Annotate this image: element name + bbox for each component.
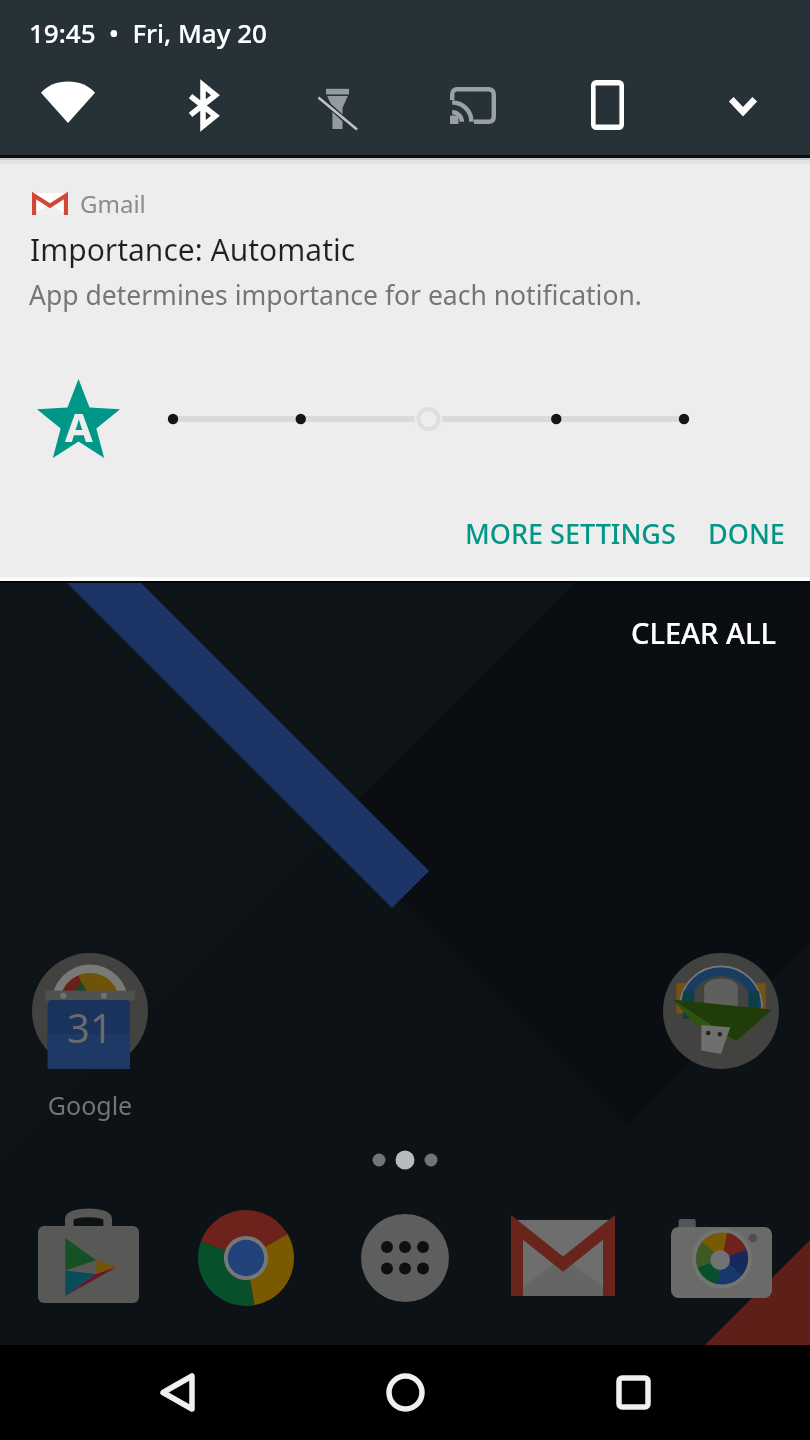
button[interactable]: Back [130,1345,225,1440]
button[interactable]: Flashlight off [270,72,405,138]
staticText: App determines importance for each notif… [29,277,642,313]
button[interactable]: Wi-Fi [0,72,135,138]
staticText: CLEAR ALL [631,613,776,652]
button[interactable]: Display [540,72,675,138]
button[interactable]: Camera [658,1195,784,1321]
button[interactable]: All apps [342,1195,468,1321]
button[interactable]: MORE SETTINGS [451,504,690,563]
button[interactable]: Media folder [663,953,779,1069]
staticText: MORE SETTINGS [465,515,676,552]
staticText: 19:45 • Fri, May 20 [29,15,267,50]
button[interactable]: Bluetooth [135,72,270,138]
button[interactable]: Google folder [32,953,148,1069]
button[interactable]: Recent apps [586,1345,681,1440]
button[interactable]: DONE [694,504,799,563]
button[interactable]: Chrome [183,1195,309,1321]
staticText: 31 [67,1000,113,1054]
button[interactable]: CLEAR ALL [611,599,796,666]
staticText: DONE [708,515,785,552]
staticText: A [65,399,93,453]
staticText: Importance: Automatic [30,229,356,270]
staticText: Google [25,1088,155,1122]
button[interactable]: Play Store [25,1195,151,1321]
button[interactable]: Cast screen [405,72,540,138]
button[interactable]: Expand [675,72,810,138]
staticText: Gmail [80,187,146,220]
button[interactable]: Gmail [500,1195,626,1321]
button[interactable]: Home [358,1345,453,1440]
